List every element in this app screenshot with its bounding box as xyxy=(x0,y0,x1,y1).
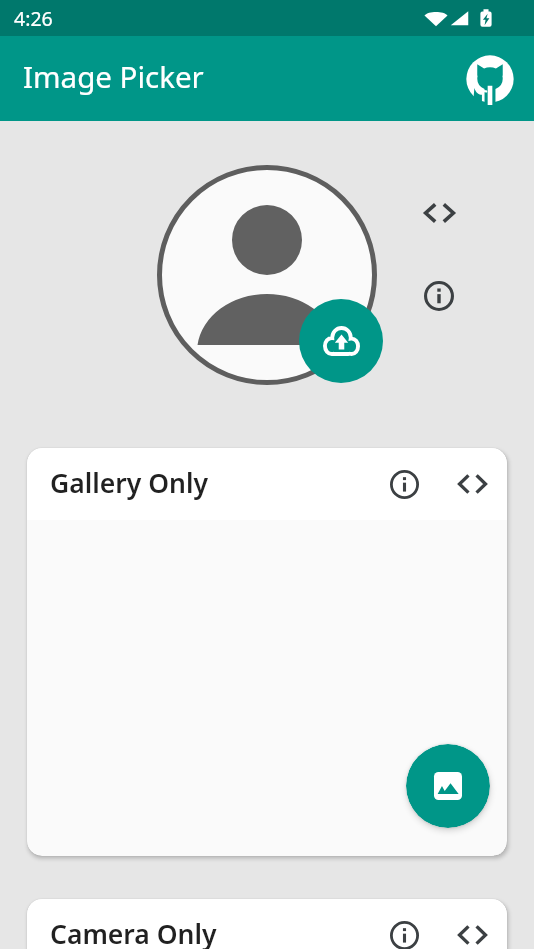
staticText: 4:26 xyxy=(14,5,53,32)
button[interactable]: GitHub repository xyxy=(463,52,517,106)
button[interactable]: Information xyxy=(414,271,464,321)
button[interactable]: View source code for Gallery Only xyxy=(449,461,495,507)
button[interactable]: Information about Gallery Only xyxy=(381,461,427,507)
staticText: Image Picker xyxy=(23,56,204,96)
button[interactable]: Information about Camera Only xyxy=(381,912,427,949)
button[interactable]: View source code for Camera Only xyxy=(449,912,495,949)
staticText: Gallery Only xyxy=(50,465,208,501)
button[interactable]: Upload image xyxy=(299,299,383,383)
button[interactable]: View source code xyxy=(414,188,464,238)
button[interactable]: Pick image from gallery xyxy=(406,744,490,828)
staticText: Camera Only xyxy=(50,916,217,949)
